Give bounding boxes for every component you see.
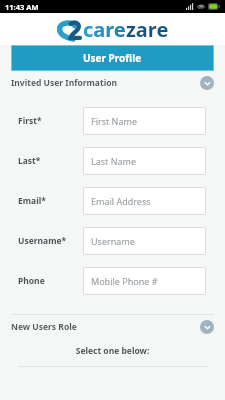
staticText: care	[83, 16, 126, 43]
staticText: Invited User Information	[11, 77, 118, 89]
staticText: Select one below:	[0, 345, 225, 357]
staticText: Email*	[18, 195, 46, 207]
button[interactable]: Last*	[0, 141, 225, 181]
button[interactable]: Phone	[0, 261, 225, 301]
staticText: Last Name	[91, 155, 137, 167]
staticText: Mobile Phone #	[91, 275, 158, 287]
staticText: Username*	[18, 235, 67, 247]
button[interactable]: User Profile	[11, 45, 214, 71]
staticText: Last*	[18, 155, 41, 167]
staticText: First Name	[91, 115, 137, 127]
staticText: Username	[91, 235, 135, 247]
staticText: 11:43 AM	[5, 2, 39, 12]
staticText: First*	[18, 115, 42, 127]
button[interactable]: First*	[0, 101, 225, 141]
button[interactable]: Username*	[0, 221, 225, 261]
button[interactable]: New Users Role	[11, 315, 214, 339]
staticText: Phone	[18, 275, 45, 287]
staticText: zare	[126, 16, 169, 43]
staticText: Email Address	[91, 195, 151, 207]
other: Collapse New Users Role	[200, 320, 214, 334]
staticText: User Profile	[83, 51, 142, 65]
other: Collapse Invited User Information	[200, 76, 214, 90]
staticText: New Users Role	[11, 321, 77, 333]
button[interactable]: Email*	[0, 181, 225, 221]
button[interactable]: Invited User Information	[11, 71, 214, 95]
